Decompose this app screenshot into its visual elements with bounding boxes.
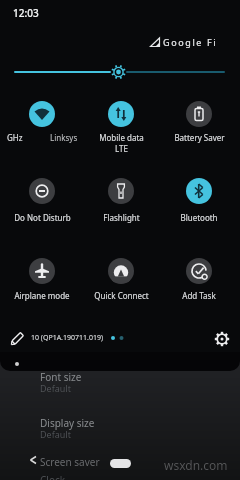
button[interactable]: [186, 258, 212, 284]
button[interactable]: [108, 101, 134, 127]
staticText: Add Task: [182, 290, 216, 301]
staticText: LTE: [115, 143, 128, 154]
staticText: wsxdn.com: [164, 457, 228, 473]
button[interactable]: [108, 178, 134, 204]
staticText: Battery Saver: [174, 132, 225, 143]
staticText: 10 (QP1A.190711.019): [31, 333, 103, 343]
button[interactable]: [29, 101, 55, 127]
staticText: Mobile data: [99, 132, 144, 143]
button[interactable]: [29, 178, 55, 204]
staticText: Linksys: [50, 132, 78, 143]
staticText: 12:03: [13, 6, 39, 20]
staticText: Default: [40, 382, 71, 394]
staticText: GHz: [7, 132, 23, 143]
staticText: Flashlight: [103, 212, 140, 223]
staticText: Default: [40, 428, 71, 440]
button[interactable]: [6, 328, 28, 350]
button[interactable]: [186, 101, 212, 127]
staticText: Bluetooth: [180, 212, 218, 223]
staticText: Screen saver: [40, 455, 100, 469]
button[interactable]: [211, 328, 233, 350]
button[interactable]: [108, 258, 134, 284]
staticText: Clock: [40, 473, 66, 480]
button[interactable]: [110, 459, 131, 468]
staticText: Font size: [40, 370, 82, 384]
button[interactable]: [29, 258, 55, 284]
staticText: Do Not Disturb: [14, 212, 71, 223]
staticText: Quick Connect: [94, 290, 149, 301]
staticText: Display size: [40, 416, 95, 430]
staticText: Google Fi: [163, 36, 218, 48]
button[interactable]: [186, 178, 212, 204]
staticText: Airplane mode: [14, 290, 70, 301]
